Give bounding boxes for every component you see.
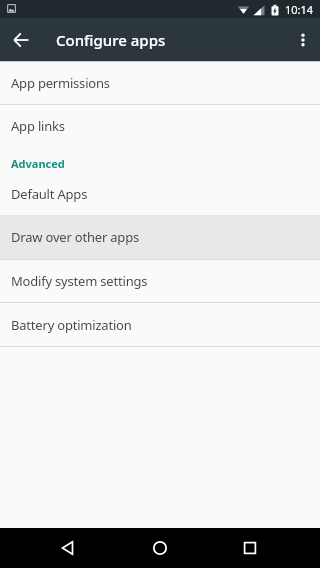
staticText: App links bbox=[11, 117, 65, 135]
staticText: Configure apps bbox=[56, 30, 166, 50]
button[interactable]: Default Apps bbox=[0, 172, 320, 215]
staticText: Draw over other apps bbox=[11, 228, 139, 246]
button[interactable]: App links bbox=[0, 105, 320, 146]
staticText: App permissions bbox=[11, 74, 110, 92]
button[interactable] bbox=[226, 528, 274, 568]
button[interactable]: App permissions bbox=[0, 62, 320, 104]
button[interactable]: Battery optimization bbox=[0, 303, 320, 346]
button[interactable] bbox=[44, 528, 92, 568]
staticText: Advanced bbox=[11, 156, 65, 171]
staticText: 10:14 bbox=[285, 2, 314, 17]
staticText: Modify system settings bbox=[11, 272, 148, 290]
button[interactable] bbox=[286, 18, 320, 61]
staticText: Default Apps bbox=[11, 185, 88, 203]
button[interactable]: Draw over other apps bbox=[0, 215, 320, 259]
button[interactable] bbox=[0, 18, 42, 61]
staticText: Battery optimization bbox=[11, 316, 132, 334]
button[interactable]: Modify system settings bbox=[0, 260, 320, 302]
button[interactable] bbox=[136, 528, 184, 568]
